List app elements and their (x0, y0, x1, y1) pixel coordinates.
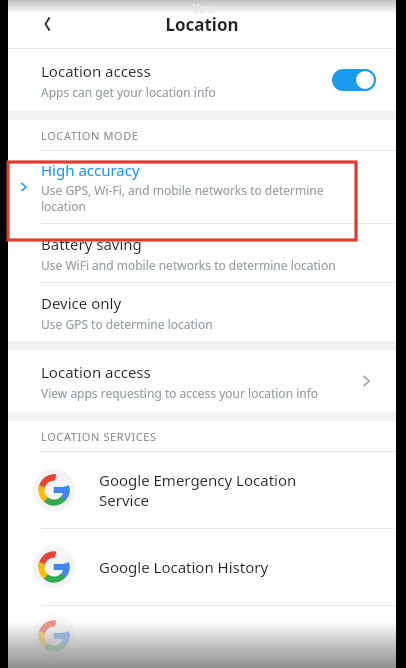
button[interactable]: Device only (8, 283, 396, 341)
staticText: High accuracy (41, 160, 140, 180)
staticText: LOCATION MODE (41, 128, 139, 143)
button[interactable]: Google Location History (8, 529, 396, 605)
button[interactable]: Location access (8, 350, 396, 412)
button[interactable] (8, 606, 396, 666)
button[interactable]: High accuracy (8, 151, 396, 223)
button[interactable]: Google Emergency Location (8, 452, 396, 528)
staticText: View apps requesting to access your loca… (41, 385, 319, 401)
staticText: Device only (41, 293, 122, 313)
staticText: LOCATION SERVICES (41, 429, 157, 444)
staticText: Google Emergency Location (99, 470, 297, 490)
button[interactable]: Back (30, 6, 66, 42)
staticText: Use GPS, Wi-Fi, and mobile networks to d… (41, 182, 356, 215)
staticText: Location access (41, 61, 151, 81)
staticText: Service (99, 490, 150, 510)
staticText: Use GPS to determine location (41, 316, 213, 332)
staticText: Location (165, 13, 239, 36)
staticText: Apps can get your location info (41, 84, 216, 100)
staticText: Location access (41, 362, 151, 382)
staticText: Battery saving (41, 234, 142, 254)
staticText: You (192, 0, 215, 14)
staticText: Use WiFi and mobile networks to determin… (41, 257, 336, 273)
button[interactable]: Location access (8, 49, 396, 111)
staticText: Google Location History (99, 557, 269, 577)
button[interactable]: Battery saving (8, 224, 396, 282)
